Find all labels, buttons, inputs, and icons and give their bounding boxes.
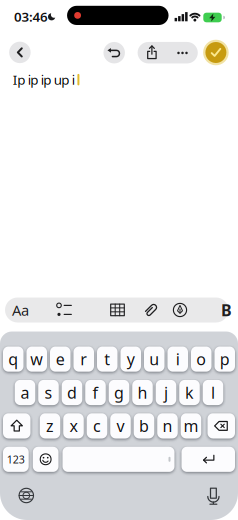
staticText: w <box>30 348 43 370</box>
button[interactable]: v <box>110 413 131 439</box>
button[interactable]: j <box>156 379 176 406</box>
button[interactable]: y <box>120 346 141 372</box>
button[interactable]: o <box>191 346 211 372</box>
button[interactable]: m <box>181 413 201 439</box>
button[interactable]: u <box>144 346 164 372</box>
button[interactable]: Done <box>203 40 229 65</box>
button[interactable]: Delete <box>207 413 235 439</box>
staticText: i <box>72 71 75 88</box>
staticText: x <box>69 415 77 436</box>
button[interactable]: k <box>179 379 200 406</box>
staticText: d <box>67 382 77 403</box>
button[interactable]: h <box>132 379 153 406</box>
staticText: i <box>176 348 180 370</box>
staticText: B <box>221 299 232 321</box>
button[interactable]: s <box>38 379 59 406</box>
button[interactable]: i <box>167 346 188 372</box>
button[interactable]: e <box>50 346 70 372</box>
button[interactable]: z <box>40 413 60 439</box>
staticText: ip <box>41 71 51 88</box>
button[interactable]: Checklist <box>50 297 78 322</box>
staticText: j <box>164 382 168 403</box>
staticText: q <box>8 348 18 370</box>
staticText: n <box>162 415 172 436</box>
staticText: z <box>46 415 54 436</box>
button[interactable]: w <box>26 346 47 372</box>
staticText: o <box>196 348 206 370</box>
button[interactable]: q <box>3 346 23 372</box>
button[interactable]: Format <box>6 297 34 322</box>
staticText: b <box>139 415 149 436</box>
staticText: a <box>20 382 29 403</box>
staticText: y <box>127 348 135 370</box>
button[interactable]: Return <box>181 446 235 472</box>
staticText: k <box>185 382 194 403</box>
button[interactable]: Markup <box>166 297 194 322</box>
button[interactable]: f <box>85 379 106 406</box>
staticText: Ip <box>13 71 25 88</box>
button[interactable]: Attach <box>137 297 165 322</box>
staticText: 123 <box>7 452 25 466</box>
button[interactable]: Bold <box>219 297 233 322</box>
button[interactable]: b <box>134 413 154 439</box>
staticText: t <box>104 348 110 370</box>
staticText: Aa <box>12 300 29 320</box>
button[interactable]: Back <box>9 42 31 63</box>
staticText: up <box>54 71 69 88</box>
button[interactable]: Share <box>138 42 166 63</box>
button[interactable]: Dictate <box>204 487 222 505</box>
staticText: e <box>56 348 65 370</box>
button[interactable]: p <box>214 346 235 372</box>
staticText: ip <box>28 71 38 88</box>
button[interactable]: Next keyboard <box>17 486 35 505</box>
button[interactable]: n <box>157 413 178 439</box>
button[interactable]: r <box>73 346 94 372</box>
button[interactable]: g <box>109 379 129 406</box>
button[interactable]: Emoji <box>33 446 58 472</box>
button[interactable]: Table <box>103 297 131 322</box>
staticText: u <box>149 348 159 370</box>
staticText: s <box>44 382 52 403</box>
staticText: v <box>116 415 124 436</box>
button[interactable]: Shift <box>3 413 30 439</box>
button[interactable]: d <box>62 379 82 406</box>
staticText: m <box>183 415 198 436</box>
button[interactable]: Space <box>62 446 174 472</box>
staticText: l <box>211 382 215 403</box>
staticText: 03:46 <box>14 8 48 25</box>
staticText: f <box>92 382 98 403</box>
staticText: r <box>80 348 87 370</box>
button[interactable]: Numbers <box>3 446 29 472</box>
button[interactable]: l <box>203 379 223 406</box>
button[interactable]: More <box>168 42 196 63</box>
button[interactable]: c <box>87 413 107 439</box>
button[interactable]: x <box>63 413 84 439</box>
button[interactable]: t <box>97 346 117 372</box>
staticText: g <box>114 382 124 403</box>
button[interactable]: a <box>15 379 35 406</box>
staticText: p <box>220 348 230 370</box>
staticText: c <box>93 415 101 436</box>
button[interactable]: Undo <box>103 42 125 63</box>
staticText: h <box>137 382 147 403</box>
